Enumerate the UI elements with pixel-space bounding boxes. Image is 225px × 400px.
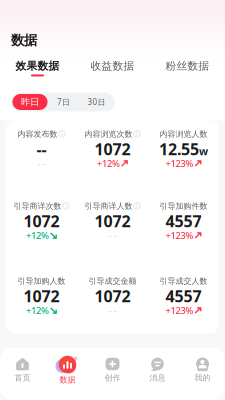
staticText: 引导商详次数: [13, 201, 61, 211]
staticText: +12%: [97, 157, 120, 170]
staticText: 首页: [14, 373, 30, 383]
button[interactable]: 粉丝数据: [150, 59, 225, 76]
staticText: 内容浏览人数: [159, 129, 207, 139]
button[interactable]: 收益数据: [75, 59, 150, 76]
button[interactable]: 昨日: [12, 94, 47, 110]
staticText: 内容发布数: [17, 129, 57, 139]
staticText: +123%: [165, 157, 193, 170]
staticText: w: [199, 144, 208, 158]
staticText: 收益数据: [90, 59, 134, 72]
staticText: 1072: [94, 138, 130, 160]
staticText: 1072: [23, 285, 59, 307]
staticText: 内容浏览次数: [84, 129, 132, 139]
staticText: 引导加购人数: [17, 276, 65, 286]
staticText: 数据: [11, 32, 37, 48]
button[interactable]: 创作: [90, 357, 135, 383]
staticText: - -: [37, 157, 45, 170]
staticText: 昨日: [21, 96, 39, 108]
button[interactable]: 消息: [135, 357, 180, 383]
button[interactable]: 30日: [79, 94, 113, 110]
staticText: 我的: [194, 373, 210, 383]
button[interactable]: 我的: [180, 357, 225, 383]
staticText: 4557: [165, 210, 201, 232]
staticText: 效果数据: [15, 59, 59, 72]
staticText: 30日: [87, 97, 105, 107]
staticText: 引导成交人数: [159, 276, 207, 286]
staticText: 引导加购件数: [159, 201, 207, 211]
staticText: 1072: [23, 210, 59, 232]
staticText: 4557: [165, 285, 201, 307]
staticText: 7日: [57, 97, 70, 107]
staticText: 引导成交金额: [88, 276, 136, 286]
button[interactable]: 效果数据: [0, 59, 75, 76]
staticText: 创作: [104, 373, 120, 383]
button[interactable]: 7日: [47, 94, 79, 110]
staticText: 数据: [59, 375, 75, 385]
staticText: --: [36, 138, 46, 160]
staticText: 粉丝数据: [165, 59, 209, 72]
staticText: - -: [108, 229, 116, 242]
button[interactable]: 数据: [45, 355, 90, 385]
staticText: 1072: [94, 210, 130, 232]
staticText: +123%: [165, 304, 193, 317]
staticText: +12%: [26, 304, 49, 317]
staticText: 1072: [94, 285, 130, 307]
staticText: +12%: [26, 229, 49, 242]
staticText: +123%: [165, 229, 193, 242]
staticText: - -: [108, 304, 116, 317]
button[interactable]: 首页: [0, 357, 45, 383]
staticText: 引导商详人数: [84, 201, 132, 211]
staticText: 12.55: [159, 138, 199, 160]
staticText: 消息: [149, 373, 165, 383]
